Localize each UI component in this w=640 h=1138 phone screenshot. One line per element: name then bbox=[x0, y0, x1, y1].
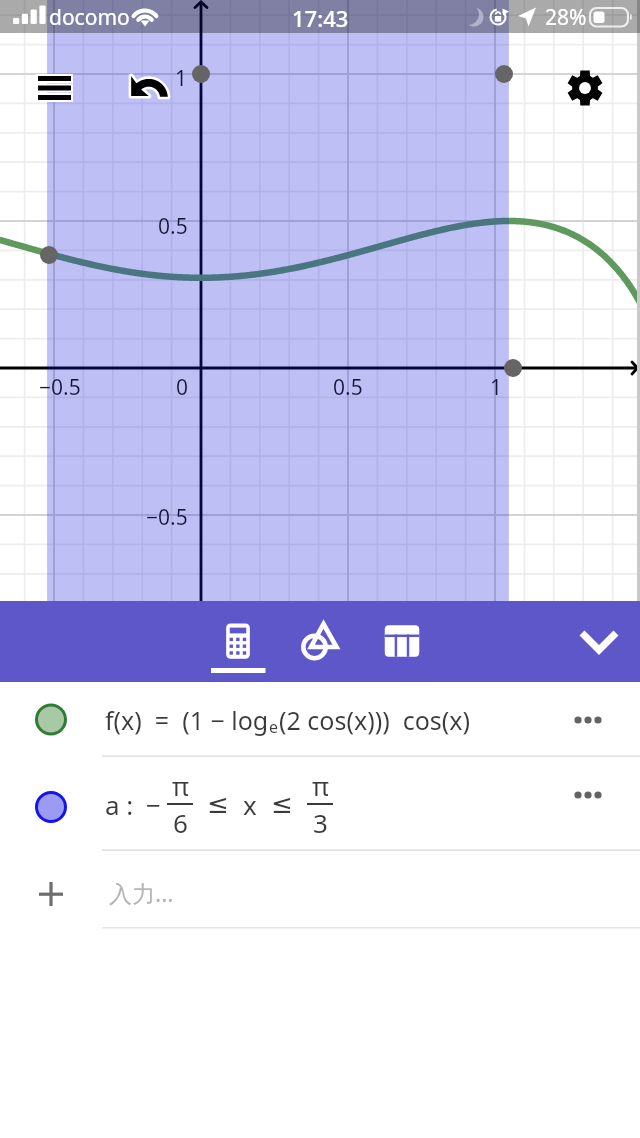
button[interactable]: Add expression bbox=[27, 870, 75, 918]
staticText: 6 bbox=[173, 805, 188, 840]
button[interactable]: Geometry bbox=[282, 601, 358, 682]
staticText: 1 bbox=[490, 373, 503, 402]
button[interactable]: More options bbox=[552, 771, 622, 819]
staticText: ≤ bbox=[207, 789, 229, 819]
button[interactable]: Menu bbox=[30, 63, 82, 115]
button[interactable]: Table bbox=[364, 601, 440, 682]
staticText: 1 bbox=[175, 64, 188, 93]
button[interactable]: Inequality a bbox=[0, 757, 640, 851]
staticText: − bbox=[146, 787, 161, 822]
staticText: 0.5 bbox=[158, 212, 188, 241]
staticText: f(x) = (1 − log bbox=[105, 703, 269, 737]
staticText: docomo bbox=[49, 3, 130, 32]
staticText: a : bbox=[105, 787, 134, 822]
button[interactable]: Add expression bbox=[0, 851, 640, 928]
staticText: e bbox=[269, 716, 279, 738]
staticText: (2 cos(x))) cos(x) bbox=[279, 703, 470, 737]
staticText: 28% bbox=[545, 3, 587, 32]
button[interactable]: Settings bbox=[559, 62, 611, 114]
button[interactable]: Function f of x bbox=[0, 682, 640, 757]
staticText: x bbox=[243, 787, 257, 822]
button[interactable]: More options bbox=[552, 696, 622, 744]
staticText: −0.5 bbox=[39, 373, 81, 402]
staticText: 3 bbox=[313, 805, 328, 840]
staticText: −0.5 bbox=[146, 503, 188, 532]
staticText: 0 bbox=[176, 373, 189, 402]
staticText: ≤ bbox=[271, 789, 293, 819]
staticText: 17:43 bbox=[292, 3, 349, 33]
staticText: π bbox=[312, 768, 329, 803]
button[interactable]: Calculator bbox=[200, 601, 276, 682]
button[interactable]: Collapse panel bbox=[564, 601, 634, 682]
button[interactable]: Undo bbox=[124, 62, 176, 114]
staticText: π bbox=[172, 768, 189, 803]
staticText: 0.5 bbox=[333, 373, 363, 402]
staticText: 入力... bbox=[109, 877, 174, 908]
